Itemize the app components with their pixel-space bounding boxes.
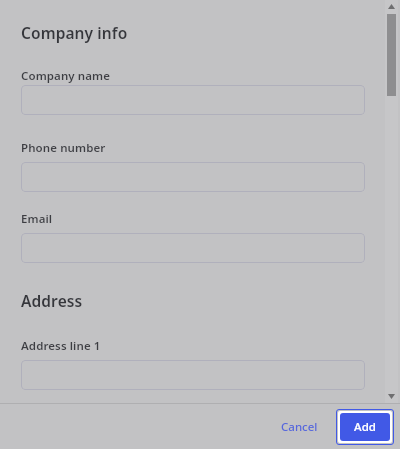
staticText: Company info [21, 22, 128, 43]
staticText: Cancel [281, 419, 318, 435]
button[interactable]: Email [21, 233, 365, 263]
button[interactable]: Scroll down [385, 390, 398, 403]
button[interactable]: Cancel [269, 411, 330, 443]
staticText: Address line 1 [21, 338, 101, 354]
button[interactable]: Address line 1 [21, 360, 365, 390]
staticText: Phone number [21, 140, 106, 156]
staticText: Address [21, 290, 83, 311]
button[interactable]: Phone number [21, 162, 365, 192]
button[interactable]: Add [340, 413, 390, 441]
staticText: Email [21, 211, 53, 227]
staticText: Add [354, 419, 376, 435]
staticText: Company name [21, 68, 111, 84]
button[interactable]: Company name [21, 85, 365, 115]
button[interactable]: Scroll up [385, 0, 398, 13]
